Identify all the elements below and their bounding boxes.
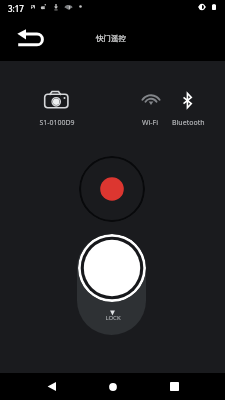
button[interactable]: Recent apps (153, 373, 196, 400)
staticText: 3:17 (8, 3, 24, 14)
button[interactable]: Back (30, 373, 73, 400)
staticText: Bluetooth (172, 118, 205, 128)
button[interactable]: S1-0100D9 (30, 86, 84, 128)
button[interactable]: Shutter (78, 234, 146, 302)
button[interactable]: Home (91, 373, 134, 400)
button[interactable]: Wi-Fi (134, 86, 167, 128)
button[interactable]: Record video (79, 156, 145, 222)
staticText: S1-0100D9 (39, 118, 75, 128)
button[interactable]: Lock (77, 234, 146, 335)
button[interactable]: Back (5, 20, 52, 58)
staticText: Wi-Fi (142, 118, 159, 128)
staticText: LOCK (105, 314, 121, 322)
staticText: 快门遥控 (96, 34, 126, 43)
button[interactable]: Bluetooth (169, 86, 207, 128)
